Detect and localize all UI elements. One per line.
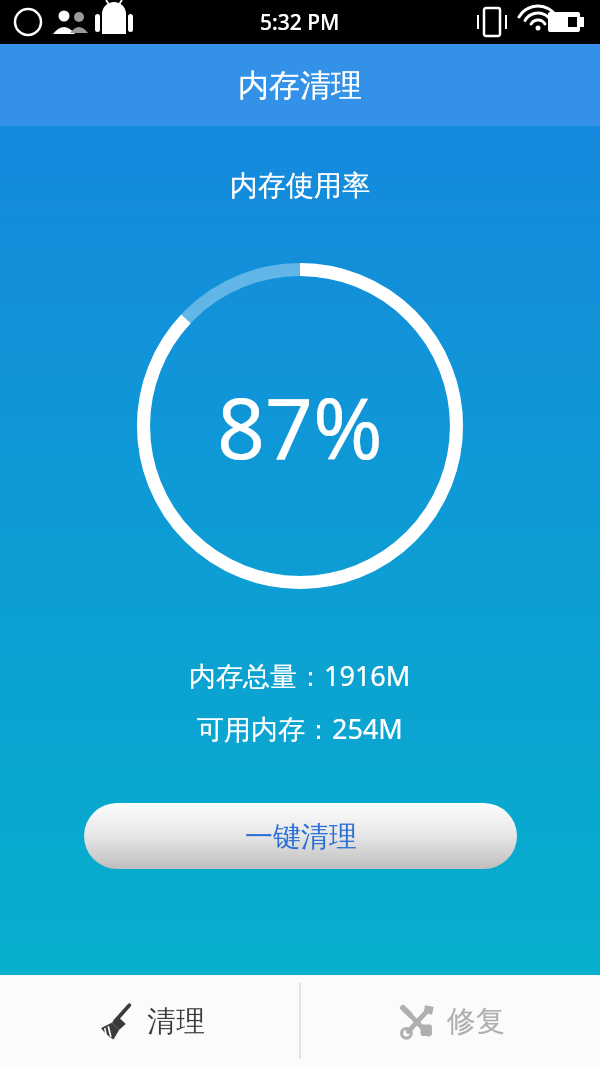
- button[interactable]: 清理: [0, 975, 300, 1067]
- staticText: 一键清理: [245, 819, 357, 854]
- staticText: 内存使用率: [230, 168, 370, 203]
- button[interactable]: 修复: [300, 975, 600, 1067]
- staticText: 87%: [217, 369, 383, 483]
- staticText: 内存总量：1916M: [189, 657, 411, 694]
- staticText: 5:32 PM: [260, 8, 340, 37]
- button[interactable]: 一键清理: [84, 803, 517, 869]
- staticText: 清理: [147, 1003, 205, 1040]
- staticText: 修复: [447, 1003, 505, 1040]
- staticText: 内存清理: [238, 66, 362, 105]
- staticText: 可用内存：254M: [197, 710, 403, 747]
